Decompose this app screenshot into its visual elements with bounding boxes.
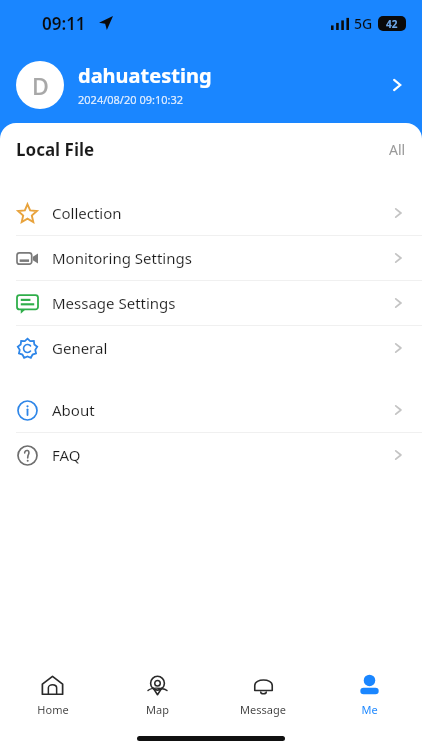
staticText: All [389,140,406,159]
staticText: 5G [354,14,373,33]
staticText: Map [146,702,169,717]
staticText: Me [361,702,378,717]
button[interactable]: Monitoring Settings [0,236,422,280]
staticText: D [32,70,49,101]
staticText: Home [37,702,69,717]
staticText: Monitoring Settings [52,248,390,268]
button[interactable]: FAQ [0,433,422,477]
staticText: General [52,338,390,358]
button[interactable]: Home [0,673,105,717]
button[interactable]: General [0,326,422,370]
staticText: dahuatesting [78,62,212,89]
button[interactable]: Me [316,673,422,717]
staticText: About [52,400,390,420]
staticText: 42 [386,17,398,31]
button[interactable]: All [389,140,406,159]
button[interactable]: D [0,46,422,123]
staticText: Local File [16,138,389,161]
button[interactable]: Message [210,673,316,717]
button[interactable]: Collection [0,191,422,235]
staticText: Collection [52,203,390,223]
staticText: Message Settings [52,293,390,313]
staticText: 2024/08/20 09:10:32 [78,92,184,107]
button[interactable]: Message Settings [0,281,422,325]
staticText: 09:11 [42,12,86,35]
staticText: Message [240,702,286,717]
button[interactable]: About [0,388,422,432]
button[interactable]: Map [105,673,210,717]
staticText: FAQ [52,445,390,465]
